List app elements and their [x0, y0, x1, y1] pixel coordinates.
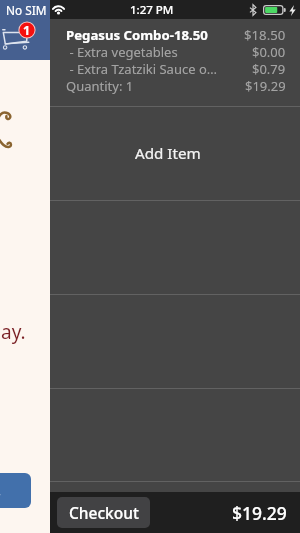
- button[interactable]: Shopping cart: [2, 28, 36, 52]
- staticText: es: [0, 482, 1, 501]
- staticText: 1: [23, 22, 31, 39]
- staticText: Quantity: 1: [66, 77, 245, 95]
- staticText: Add Item: [135, 143, 201, 164]
- staticText: $19.29: [245, 77, 286, 95]
- button[interactable]: es: [0, 473, 31, 508]
- staticText: 1:27 PM: [130, 2, 174, 18]
- button[interactable]: 1 item in cart: [18, 21, 36, 39]
- staticText: $19.29: [232, 501, 287, 525]
- staticText: $0.79: [252, 60, 286, 78]
- staticText: Checkout: [69, 502, 139, 523]
- staticText: $18.50: [244, 26, 286, 44]
- staticText: No SIM: [6, 2, 47, 18]
- button[interactable]: Pegasus Combo-18.50: [50, 19, 300, 106]
- staticText: Pegasus Combo-18.50: [66, 26, 244, 44]
- button[interactable]: Add Item: [50, 107, 300, 200]
- staticText: ay.: [1, 319, 26, 345]
- button[interactable]: Checkout: [57, 497, 150, 528]
- staticText: - Extra Tzatziki Sauce o…: [66, 60, 252, 78]
- staticText: - Extra vegetables: [66, 43, 252, 61]
- staticText: $0.00: [252, 43, 286, 61]
